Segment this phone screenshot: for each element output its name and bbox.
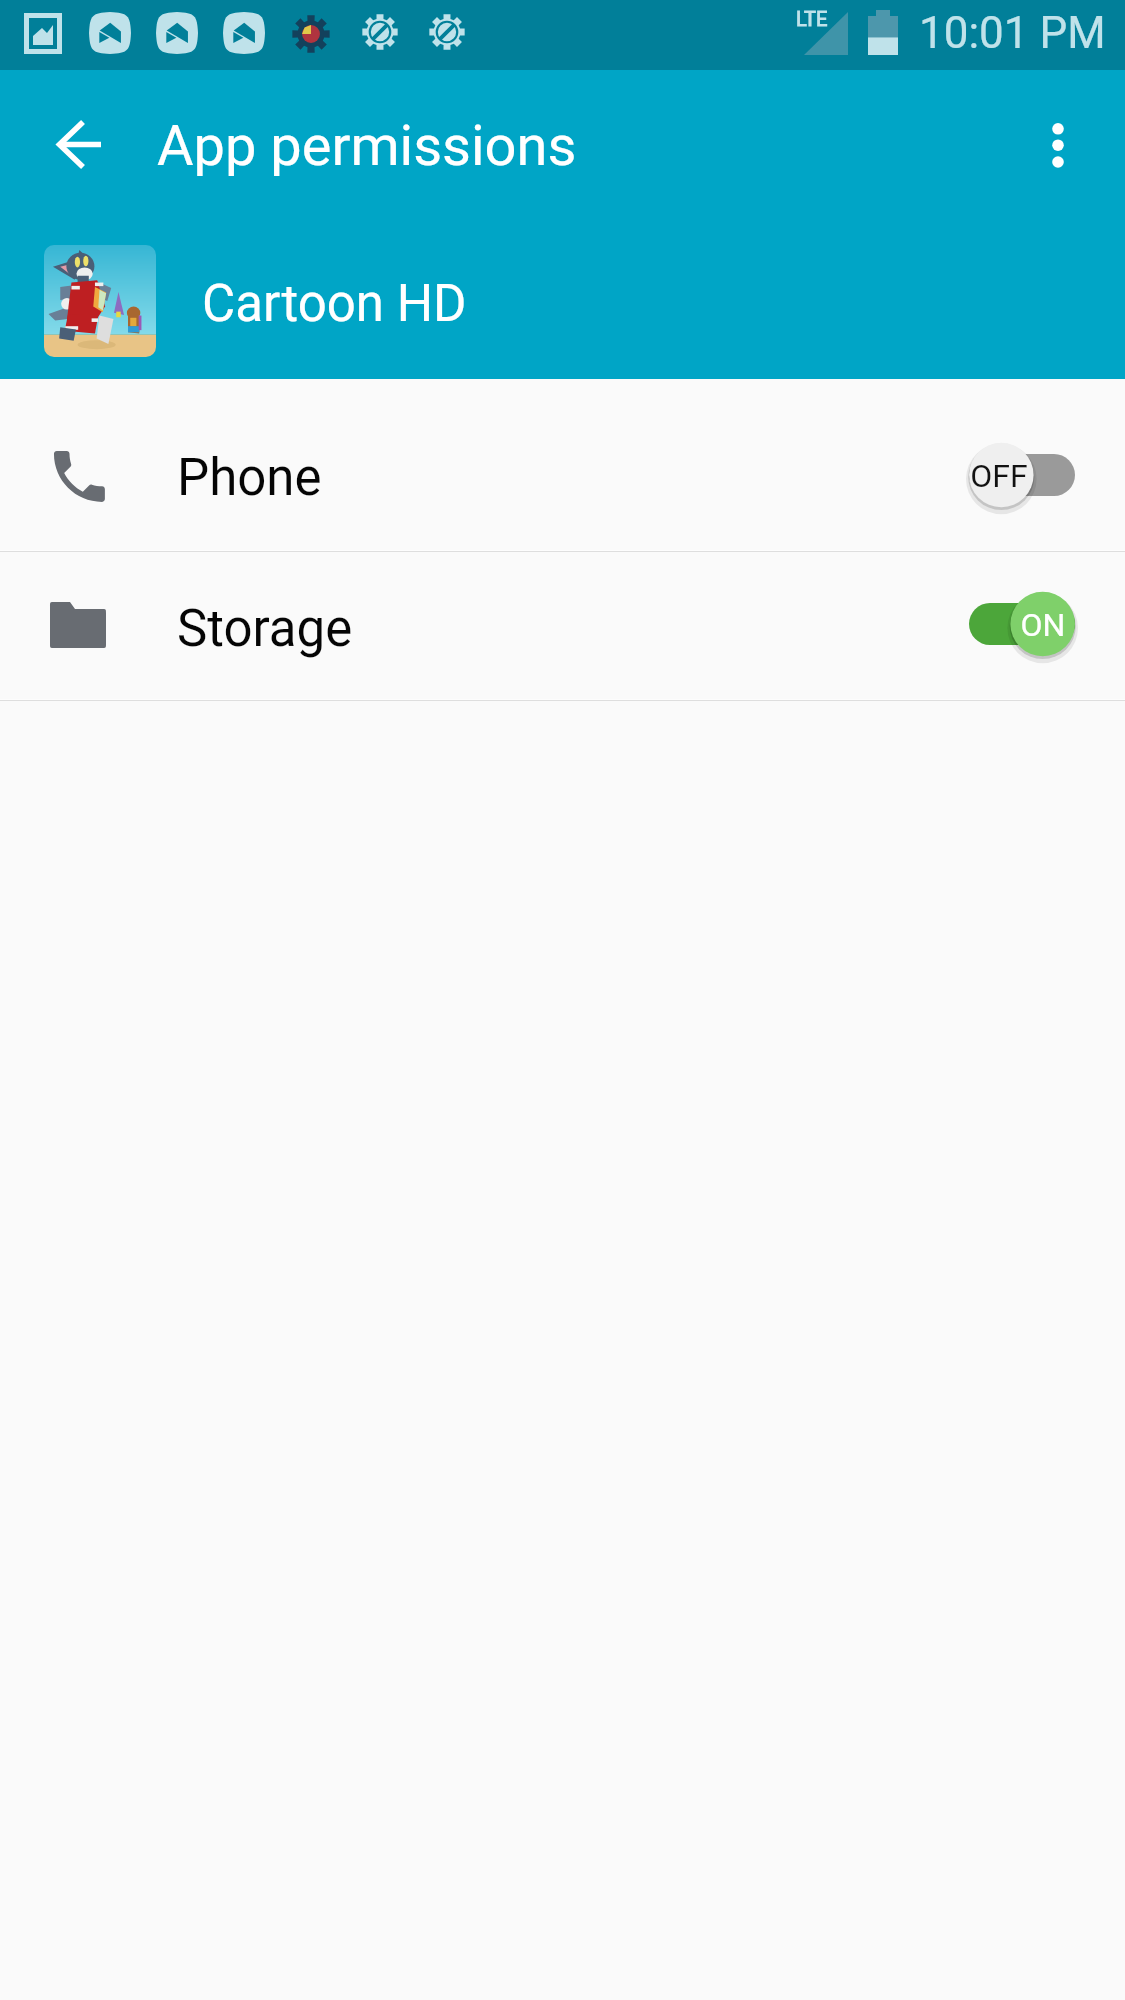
staticText: ON <box>1010 606 1076 644</box>
button[interactable]: More options <box>1023 98 1093 188</box>
staticText: LTE <box>796 7 828 30</box>
button[interactable]: Cartoon HD <box>0 235 1125 367</box>
staticText: OFF <box>966 457 1032 495</box>
staticText: Storage <box>177 599 353 659</box>
button[interactable]: Navigate up <box>28 96 128 196</box>
button[interactable]: Switch on <box>966 584 1078 664</box>
staticText: 10:01 PM <box>919 7 1106 59</box>
button[interactable]: Storage <box>0 552 1125 699</box>
staticText: Phone <box>177 448 322 508</box>
button[interactable]: Switch off <box>966 435 1078 515</box>
staticText: App permissions <box>157 113 577 179</box>
button[interactable]: Phone <box>0 379 1125 550</box>
staticText: Cartoon HD <box>202 274 467 334</box>
